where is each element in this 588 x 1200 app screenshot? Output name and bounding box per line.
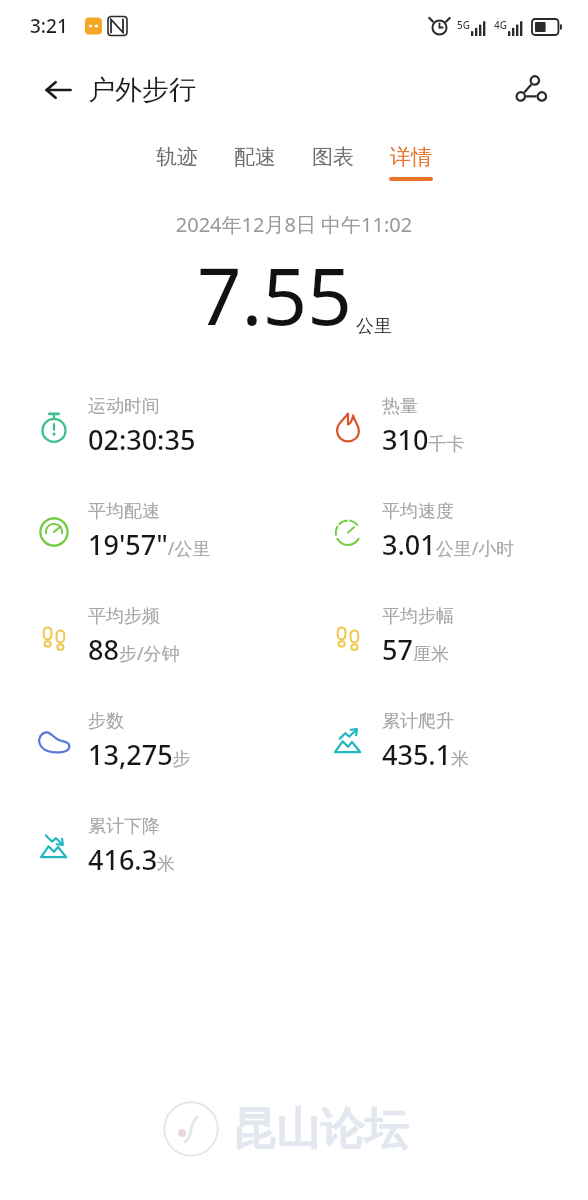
button[interactable]: Share <box>508 67 554 113</box>
staticText: 运动时间 <box>88 395 160 418</box>
button[interactable]: 运动时间 <box>0 374 294 479</box>
staticText: 热量 <box>382 395 418 418</box>
staticText: 户外步行 <box>88 73 196 107</box>
staticText: 步数 <box>88 710 124 733</box>
button[interactable]: 平均步幅 <box>294 584 588 689</box>
staticText: 图表 <box>312 144 354 170</box>
staticText: 88步/分钟 <box>88 631 180 668</box>
button[interactable]: 累计爬升 <box>294 689 588 794</box>
staticText: 310千卡 <box>382 421 465 458</box>
button[interactable]: 平均步频 <box>0 584 294 689</box>
staticText: 2024年12月8日 中午11:02 <box>0 211 588 238</box>
button[interactable]: 热量 <box>294 374 588 479</box>
staticText: 416.3米 <box>88 841 176 878</box>
staticText: 平均配速 <box>88 500 160 523</box>
staticText: 公里 <box>356 315 392 338</box>
staticText: 7.55 <box>197 242 352 348</box>
staticText: 累计爬升 <box>382 710 454 733</box>
button[interactable]: 详情 <box>385 142 437 183</box>
staticText: 平均步幅 <box>382 605 454 628</box>
staticText: 57厘米 <box>382 631 449 668</box>
button[interactable]: 平均速度 <box>294 479 588 584</box>
staticText: 13,275步 <box>88 736 191 773</box>
staticText: 19'57"/公里 <box>88 526 211 563</box>
button[interactable]: 轨迹 <box>151 142 203 183</box>
staticText: 详情 <box>390 144 432 170</box>
button[interactable]: 平均配速 <box>0 479 294 584</box>
staticText: 3:21 <box>30 13 68 39</box>
staticText: 平均步频 <box>88 605 160 628</box>
staticText: 配速 <box>234 144 276 170</box>
staticText: 5G <box>457 18 470 32</box>
button[interactable]: Back <box>36 68 80 112</box>
button[interactable]: 配速 <box>229 142 281 183</box>
button[interactable]: 步数 <box>0 689 294 794</box>
button[interactable]: 图表 <box>307 142 359 183</box>
button[interactable]: 累计下降 <box>0 794 294 899</box>
staticText: 累计下降 <box>88 815 160 838</box>
staticText: 平均速度 <box>382 500 454 523</box>
staticText: 3.01公里/小时 <box>382 526 515 563</box>
staticText: 4G <box>494 18 507 32</box>
staticText: 昆山论坛 <box>232 1102 408 1157</box>
staticText: 02:30:35 <box>88 421 196 458</box>
staticText: 轨迹 <box>156 144 198 170</box>
staticText: 435.1米 <box>382 736 470 773</box>
